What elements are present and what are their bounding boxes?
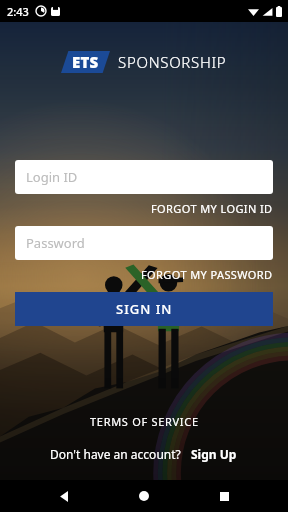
- staticText: Don't have an account?: [50, 446, 181, 462]
- button[interactable]: Recent apps: [208, 480, 240, 512]
- button[interactable]: Login ID: [15, 160, 273, 194]
- staticText: SPONSORSHIP: [118, 52, 227, 72]
- staticText: Password: [26, 234, 85, 252]
- staticText: FORGOT MY LOGIN ID: [151, 201, 273, 216]
- button[interactable]: TERMS OF SERVICE: [0, 410, 288, 433]
- staticText: Sign Up: [191, 446, 237, 462]
- staticText: 2:43: [7, 4, 29, 19]
- button[interactable]: FORGOT MY PASSWORD: [126, 266, 288, 283]
- staticText: TERMS OF SERVICE: [90, 414, 199, 429]
- staticText: FORGOT MY PASSWORD: [141, 267, 273, 282]
- button[interactable]: Back: [48, 480, 80, 512]
- staticText: ETS: [72, 52, 99, 72]
- button[interactable]: Password: [15, 226, 273, 260]
- staticText: SIGN IN: [116, 300, 173, 318]
- staticText: Login ID: [26, 168, 78, 186]
- button[interactable]: Sign Up: [190, 446, 238, 462]
- button[interactable]: Home: [128, 480, 160, 512]
- button[interactable]: FORGOT MY LOGIN ID: [136, 200, 288, 217]
- button[interactable]: SIGN IN: [15, 292, 273, 326]
